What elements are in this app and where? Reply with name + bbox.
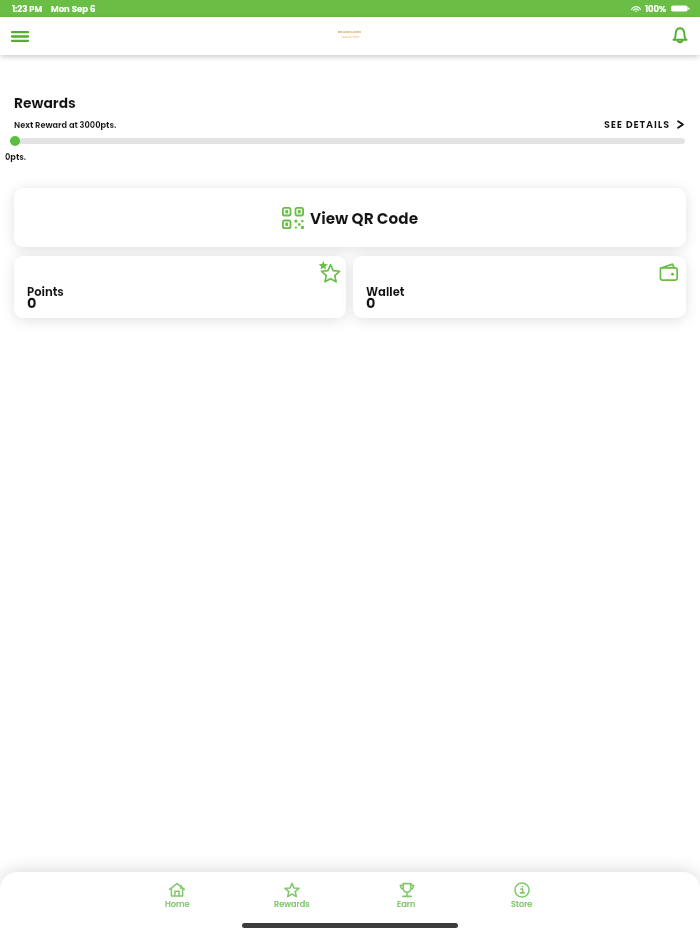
button[interactable]: Notifications (666, 21, 694, 49)
button[interactable]: Home (120, 881, 234, 910)
staticText: View QR Code (310, 208, 419, 229)
staticText: Store (511, 898, 533, 909)
staticText: Earn (397, 898, 416, 909)
button[interactable]: Points (14, 256, 346, 318)
staticText: Rewards (274, 898, 310, 909)
button[interactable]: Menu (4, 21, 35, 52)
staticText: TAGLINE HERE (341, 35, 360, 39)
button[interactable]: Wallet (353, 256, 686, 318)
staticText: 0pts. (5, 151, 27, 162)
staticText: 100% (645, 3, 667, 15)
button[interactable]: Store (464, 881, 579, 910)
staticText: 0 (366, 293, 376, 313)
staticText: BRAND LOGO (338, 29, 362, 34)
staticText: Rewards (14, 94, 76, 113)
staticText: Wallet (366, 284, 405, 300)
button[interactable]: Earn (349, 881, 464, 910)
button[interactable]: View QR Code (14, 188, 686, 247)
staticText: SEE DETAILS (604, 118, 670, 131)
staticText: Home (165, 898, 190, 909)
staticText: 0 (27, 293, 37, 313)
staticText: Mon Sep 6 (51, 3, 96, 15)
button[interactable]: Rewards (234, 881, 349, 910)
staticText: 1:23 PM (12, 3, 43, 15)
button[interactable]: SEE DETAILS (598, 118, 690, 131)
staticText: Next Reward at 3000pts. (14, 119, 117, 130)
staticText: Points (27, 284, 64, 300)
